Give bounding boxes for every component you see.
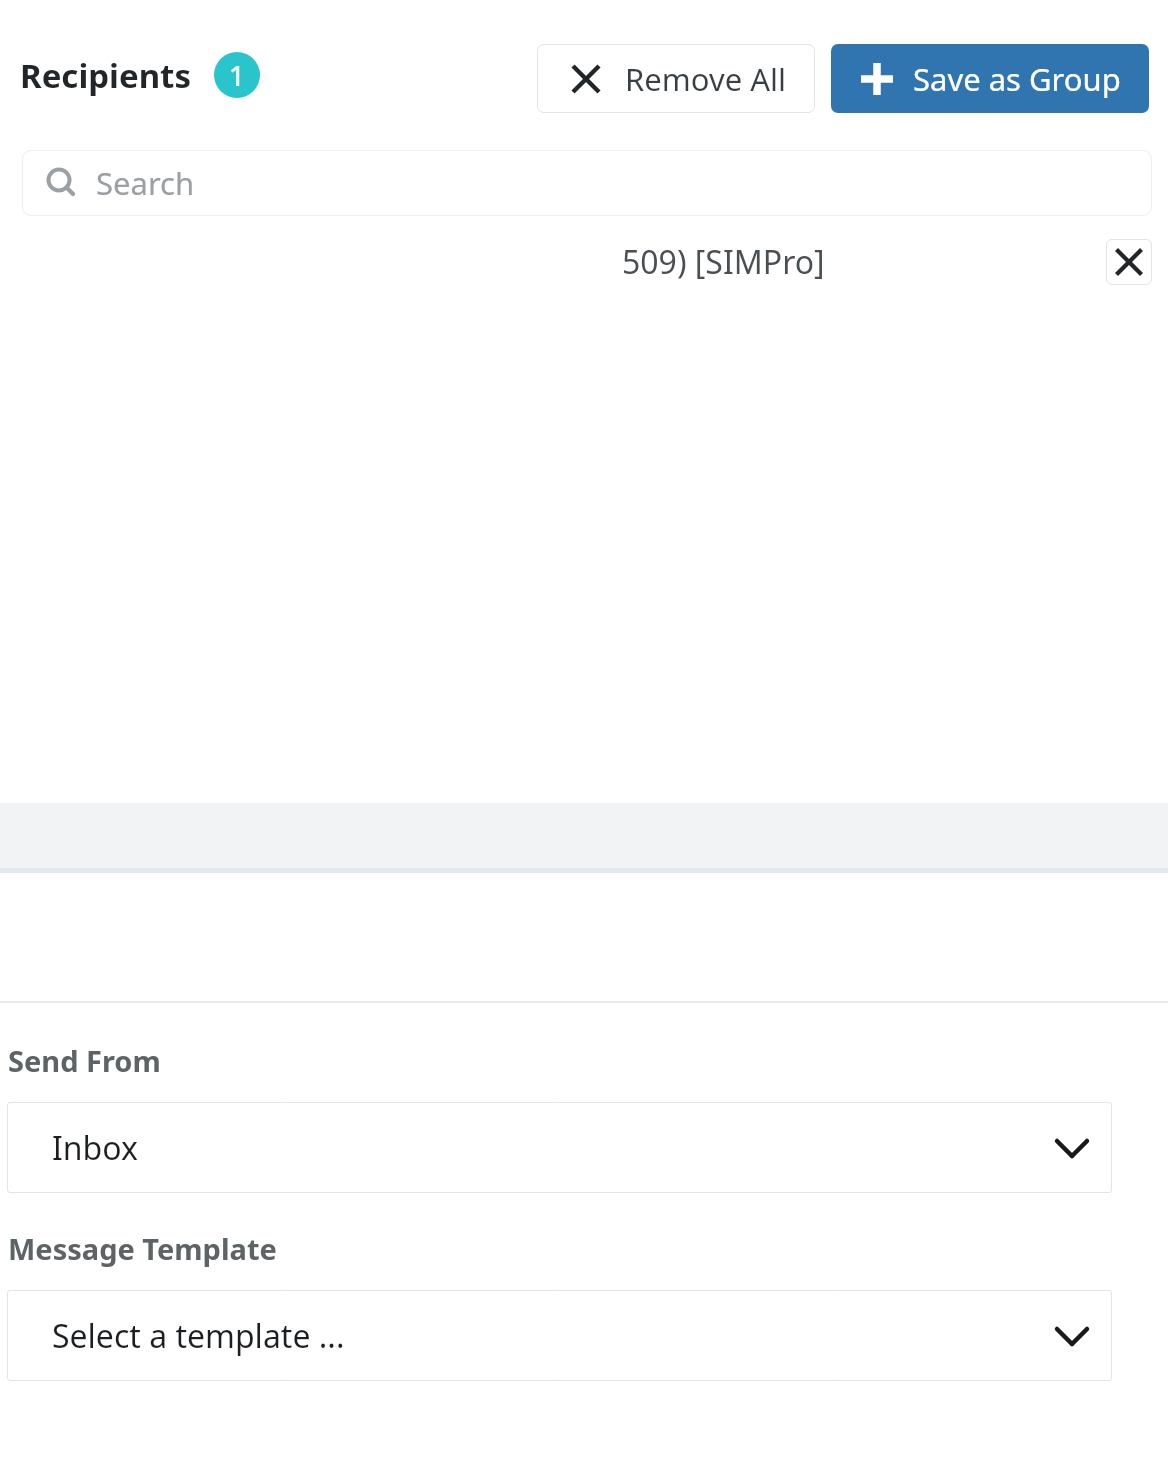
button[interactable]: Search [22,150,1152,216]
button[interactable]: Remove recipient [1106,239,1152,285]
button[interactable]: Save as Group [831,44,1149,113]
staticText: Inbox [52,1126,138,1170]
staticText: Remove All [625,58,786,100]
button[interactable]: Inbox [7,1102,1112,1193]
staticText: Search [96,162,195,204]
button[interactable]: Remove All [537,44,815,113]
staticText: Save as Group [913,58,1121,100]
button[interactable]: Select a template ... [7,1290,1112,1381]
staticText: Select a template ... [52,1314,345,1358]
staticText: Send From [8,1041,161,1080]
staticText: 509) [SIMPro] [622,240,825,284]
staticText: Message Template [8,1229,277,1268]
staticText: Recipients [20,53,192,98]
staticText: 1 [229,57,245,94]
